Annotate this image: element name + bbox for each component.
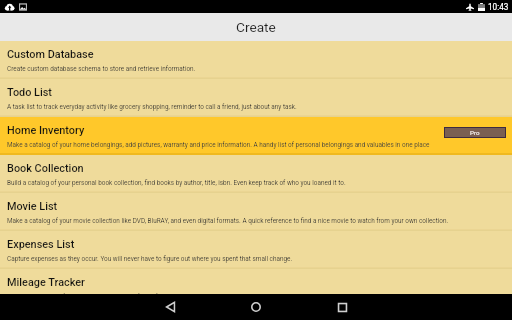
staticText: Movie List <box>7 200 58 213</box>
button[interactable]: Recent apps <box>299 294 385 320</box>
staticText: Expenses List <box>7 238 75 251</box>
button[interactable]: Book Collection <box>0 155 512 193</box>
button[interactable]: Home <box>213 294 299 320</box>
staticText: Capture expenses as they occur. You will… <box>7 255 293 263</box>
button[interactable]: Custom Database <box>0 41 512 79</box>
staticText: Custom Database <box>7 48 94 61</box>
staticText: Create <box>236 19 276 35</box>
button[interactable]: Home Inventory <box>0 117 512 155</box>
button[interactable]: Movie List <box>0 193 512 231</box>
staticText: Home Inventory <box>7 124 85 137</box>
staticText: A task list to track everyday activity l… <box>7 103 297 111</box>
button[interactable]: Back <box>127 294 213 320</box>
staticText: Pro <box>470 129 480 136</box>
button[interactable]: Mileage Tracker <box>0 269 512 294</box>
staticText: Book Collection <box>7 162 84 175</box>
staticText: Track the mileage of your vehicle, keep … <box>7 293 238 294</box>
staticText: 10:43 <box>488 2 509 12</box>
button[interactable]: Todo List <box>0 79 512 117</box>
staticText: Build a catalog of your personal book co… <box>7 179 346 187</box>
staticText: Mileage Tracker <box>7 276 85 289</box>
button[interactable]: Pro <box>444 127 506 138</box>
staticText: Make a catalog of your movie collection … <box>7 217 449 225</box>
staticText: Todo List <box>7 86 52 99</box>
staticText: Create custom database schema to store a… <box>7 65 196 73</box>
button[interactable]: Expenses List <box>0 231 512 269</box>
staticText: Make a catalog of your home belongings, … <box>7 141 430 149</box>
